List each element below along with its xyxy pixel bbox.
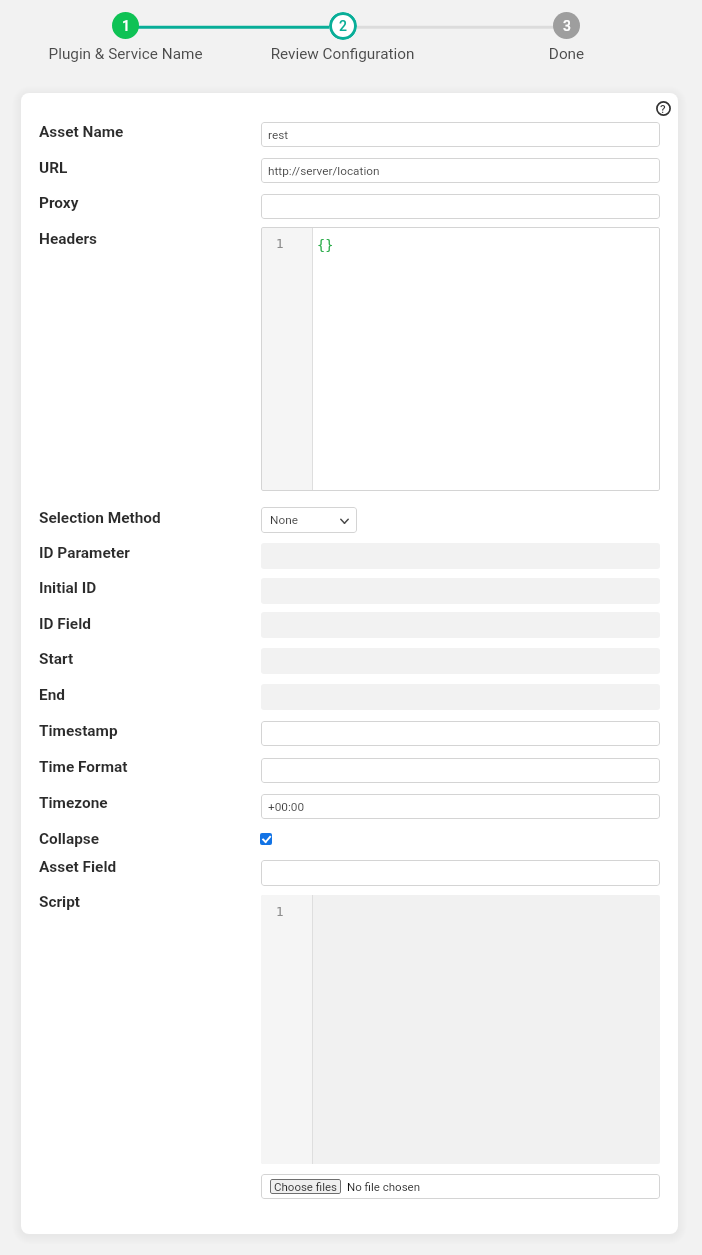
staticText: Script — [39, 893, 81, 911]
button[interactable]: 1 — [112, 12, 139, 39]
staticText: ? — [660, 102, 666, 115]
staticText: 3 — [563, 18, 571, 34]
staticText: Done — [476, 45, 657, 63]
staticText: 1 — [276, 904, 284, 919]
staticText: Timezone — [39, 794, 108, 812]
staticText: ID Field — [39, 615, 91, 633]
button[interactable]: http://server/location — [261, 158, 660, 183]
staticText: URL — [39, 159, 68, 177]
staticText: rest — [268, 128, 289, 142]
button[interactable] — [261, 721, 660, 746]
staticText: Headers — [39, 230, 97, 248]
staticText: Start — [39, 650, 74, 668]
button[interactable] — [261, 758, 660, 783]
button[interactable]: None — [261, 507, 357, 533]
staticText: {} — [317, 237, 334, 253]
button[interactable] — [261, 194, 660, 219]
staticText: 2 — [339, 18, 347, 34]
button[interactable]: 1 — [261, 227, 660, 491]
staticText: Selection Method — [39, 509, 161, 527]
staticText: 1 — [122, 18, 130, 34]
button[interactable]: rest — [261, 122, 660, 147]
staticText: Collapse — [39, 830, 100, 848]
staticText: +00:00 — [268, 800, 305, 814]
staticText: Proxy — [39, 194, 79, 212]
staticText: 1 — [276, 236, 284, 251]
button[interactable]: 2 — [329, 12, 357, 40]
staticText: End — [39, 686, 65, 704]
staticText: Timestamp — [39, 722, 118, 740]
staticText: Asset Field — [39, 858, 117, 876]
button[interactable] — [261, 860, 660, 886]
staticText: Review Configuration — [252, 45, 433, 63]
staticText: http://server/location — [268, 164, 380, 178]
button[interactable]: Help — [650, 95, 676, 121]
staticText: Time Format — [39, 758, 128, 776]
staticText: ID Parameter — [39, 544, 130, 562]
button[interactable]: Collapse checkbox — [260, 833, 272, 845]
staticText: Plugin & Service Name — [35, 45, 216, 63]
staticText: No file chosen — [347, 1180, 421, 1193]
staticText: None — [270, 513, 298, 527]
staticText: Choose files — [274, 1180, 338, 1193]
staticText: Initial ID — [39, 579, 97, 597]
button[interactable]: 3 — [553, 12, 580, 39]
button[interactable]: Choose files — [261, 1174, 660, 1199]
staticText: Asset Name — [39, 123, 124, 141]
button[interactable]: +00:00 — [261, 794, 660, 819]
